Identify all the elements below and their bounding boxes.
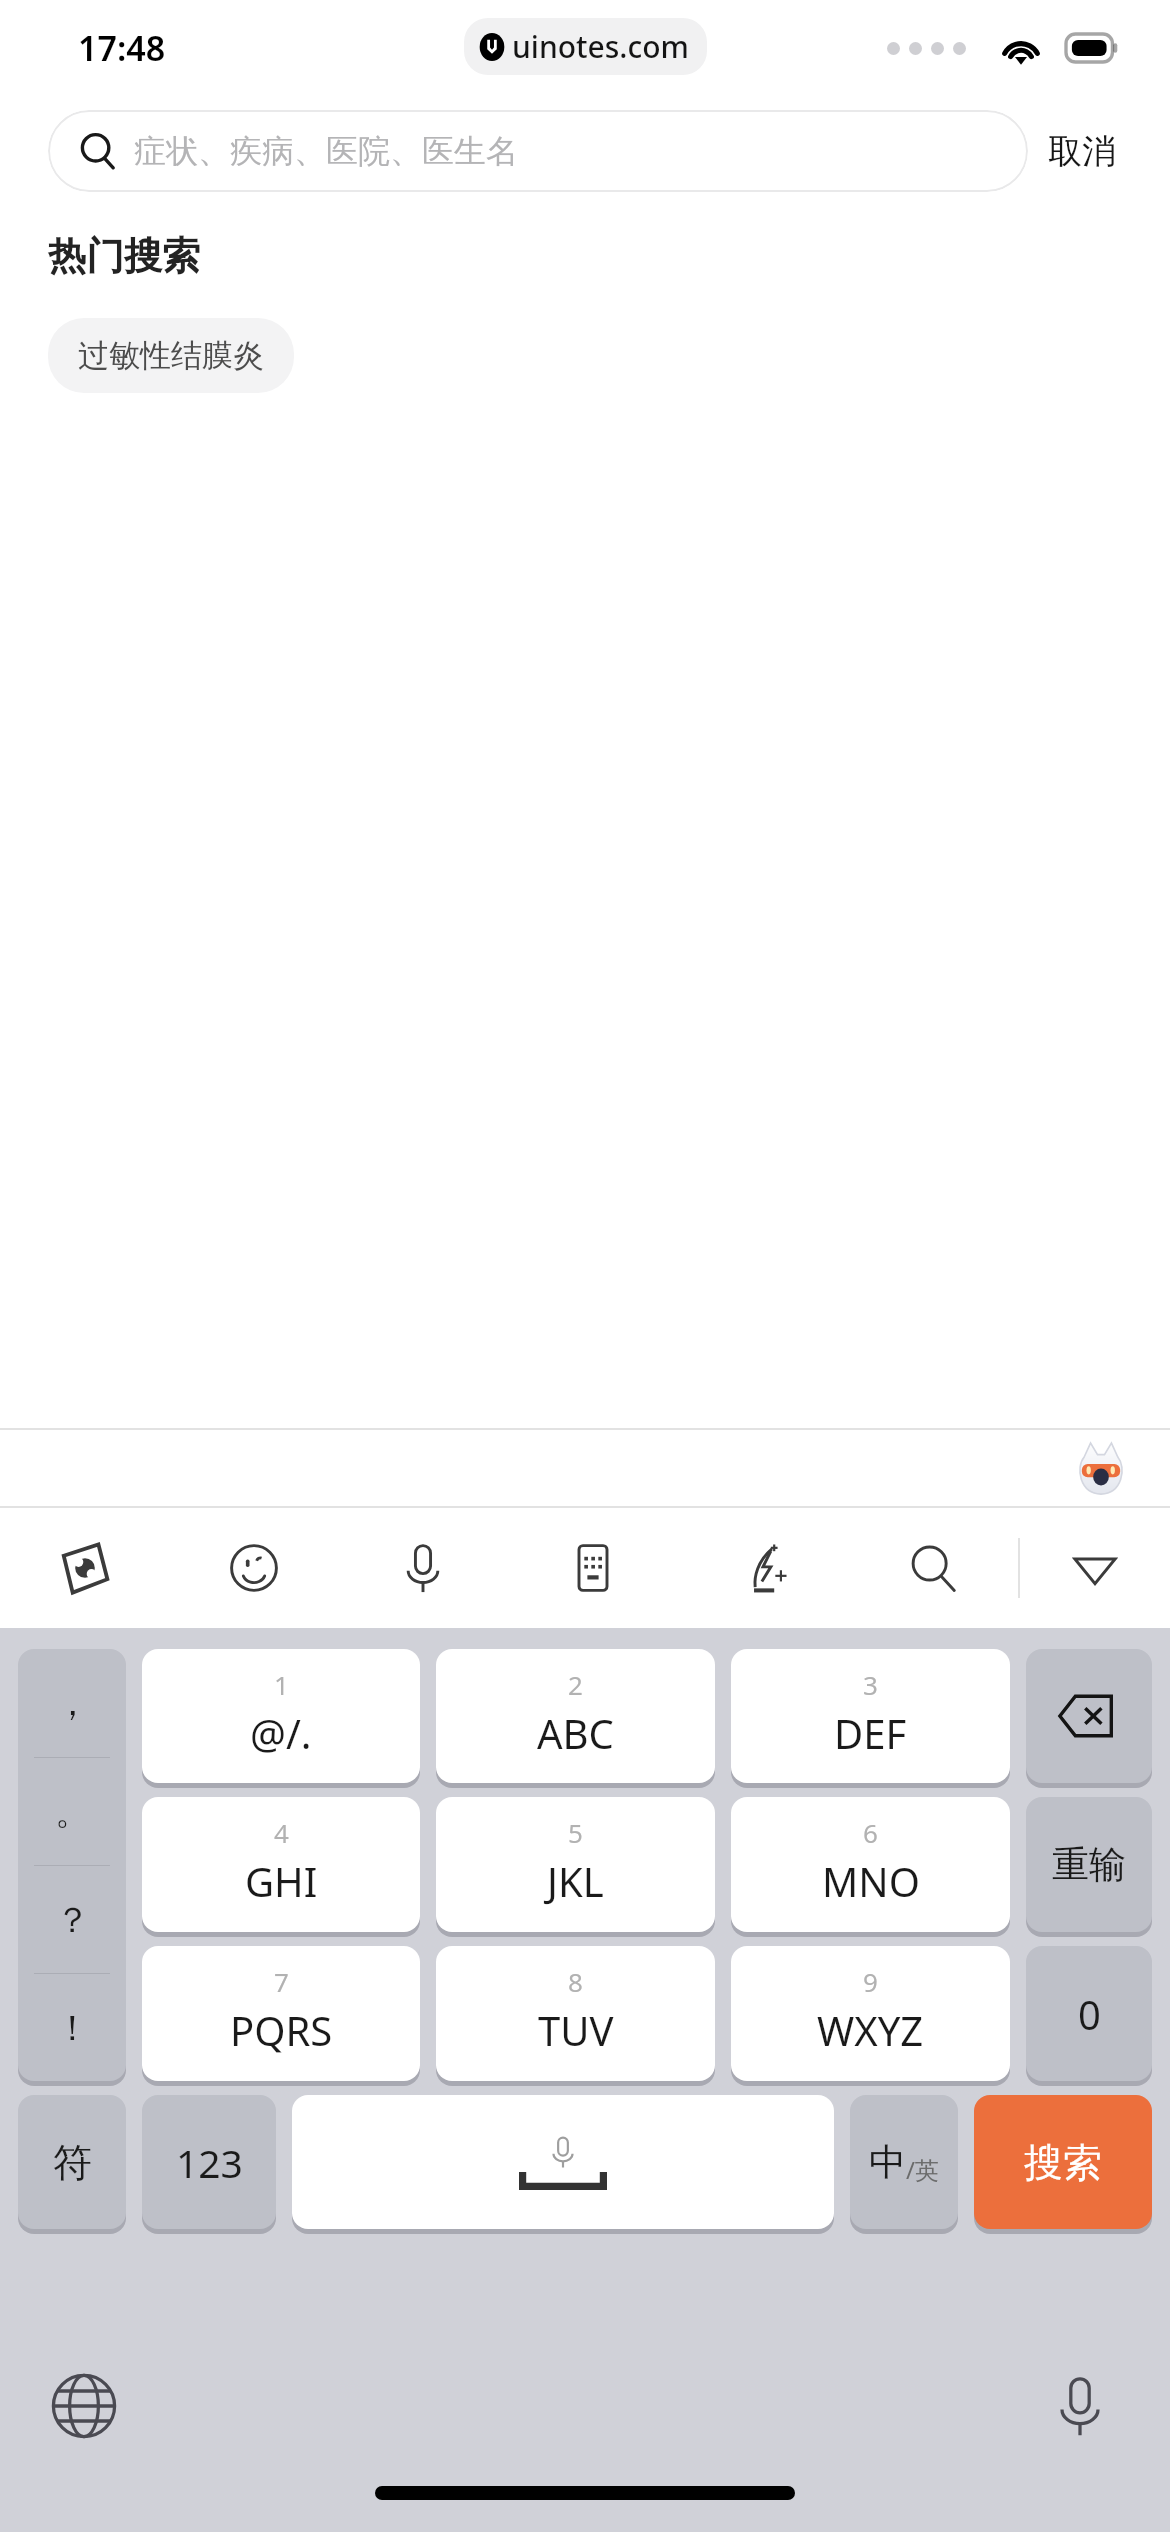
staticText: PQRS [230,2003,333,2057]
staticText: 17:48 [78,25,166,71]
button[interactable]: 取消 [1028,114,1136,189]
staticText: 4 [274,1815,289,1850]
button[interactable]: Voice input [338,1508,508,1628]
staticText: 123 [176,2136,243,2189]
button[interactable]: 6 [731,1797,1010,1932]
staticText: ABC [537,1706,614,1760]
staticText: 重输 [1052,1841,1126,1888]
button[interactable]: Hide keyboard [1020,1508,1170,1628]
button[interactable]: Search [848,1508,1018,1628]
button[interactable]: 符 [18,2095,126,2229]
staticText: 症状、疾病、医院、医生名 [134,131,518,171]
button[interactable]: 过敏性结膜炎 [48,318,294,393]
button[interactable]: 4 [142,1797,420,1932]
staticText: 6 [863,1815,878,1850]
button[interactable]: Input assistant [1072,1439,1130,1497]
staticText: 7 [274,1964,289,1999]
button[interactable]: 0 [1026,1946,1152,2081]
staticText: TUV [538,2003,614,2057]
button[interactable]: 症状、疾病、医院、医生名 [48,110,1028,192]
staticText: 5 [568,1815,583,1850]
button[interactable]: Dictation [1046,2372,1114,2440]
staticText: 过敏性结膜炎 [78,336,264,375]
button[interactable]: 2 [436,1649,715,1783]
staticText: MNO [822,1854,920,1908]
staticText: 8 [568,1964,583,1999]
button[interactable]: 3 [731,1649,1010,1783]
button[interactable]: 搜索 [974,2095,1152,2229]
button[interactable]: 7 [142,1946,420,2081]
button[interactable]: Keyboard layout [508,1508,678,1628]
staticText: /英 [906,2153,939,2186]
staticText: WXYZ [817,2003,924,2057]
button[interactable]: 5 [436,1797,715,1932]
button[interactable]: 9 [731,1946,1010,2081]
staticText: @/. [250,1706,312,1760]
staticText: 中 [869,2139,906,2186]
staticText: 1 [274,1667,289,1702]
staticText: DEF [834,1706,907,1760]
staticText: 。 [55,1790,90,1834]
button[interactable]: Delete [1026,1649,1152,1783]
button[interactable]: 8 [436,1946,715,2081]
staticText: ？ [55,1898,90,1942]
button[interactable]: 中 [850,2095,958,2229]
staticText: ！ [55,2006,90,2050]
button[interactable]: 1 [142,1649,420,1783]
button[interactable]: Space [292,2095,834,2229]
staticText: uinotes.com [512,26,689,67]
staticText: ， [55,1681,90,1725]
staticText: JKL [547,1854,604,1908]
staticText: 符 [53,2138,92,2187]
staticText: 9 [863,1964,878,1999]
staticText: 取消 [1048,130,1116,173]
staticText: 2 [568,1667,583,1702]
button[interactable]: 重输 [1026,1797,1152,1932]
button[interactable]: Switch keyboard [50,2372,118,2440]
staticText: 热门搜索 [48,232,200,280]
button[interactable]: Handwriting [678,1508,848,1628]
staticText: 0 [1078,1987,1101,2041]
button[interactable]: ， [18,1649,126,2081]
staticText: 搜索 [1024,2138,1102,2187]
staticText: 3 [863,1667,878,1702]
staticText: GHI [245,1854,318,1908]
button[interactable]: Emoji [169,1508,338,1628]
button[interactable]: 123 [142,2095,276,2229]
button[interactable]: Sogou [0,1508,169,1628]
